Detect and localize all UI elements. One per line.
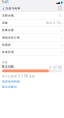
- staticText: ›: [61, 27, 62, 33]
- staticText: ‹: [2, 4, 4, 13]
- staticText: 充值与账单: [5, 7, 20, 10]
- staticText: 共 64 GB: [49, 66, 62, 69]
- button[interactable]: 增值业务订购: [0, 34, 64, 41]
- staticText: 剩余 2.1G: [46, 21, 60, 25]
- button[interactable]: 购买流量包: [2, 83, 17, 88]
- staticText: 用量: [2, 61, 8, 64]
- button[interactable]: 查看使用明细: [2, 78, 20, 83]
- staticText: 优惠券: [2, 43, 11, 46]
- staticText: 发票管理: [2, 50, 14, 54]
- staticText: 增值业务订购: [2, 36, 20, 39]
- button[interactable]: 流量: [0, 19, 64, 27]
- button[interactable]: 发票管理: [0, 49, 64, 56]
- staticText: ›: [61, 20, 62, 25]
- staticText: 流量: [2, 21, 8, 24]
- staticText: ›: [61, 35, 62, 40]
- button[interactable]: 优惠券: [0, 41, 64, 49]
- staticText: 话费余额: [2, 14, 14, 17]
- staticText: 购买流量包: [2, 85, 17, 89]
- staticText: ▂▄ ▮: [56, 1, 62, 4]
- button[interactable]: 话费余额: [0, 12, 64, 19]
- staticText: 8.3 GB: [2, 64, 14, 69]
- button[interactable]: 返回: [1, 4, 5, 12]
- staticText: ›: [61, 42, 62, 47]
- button[interactable]: 套餐余量: [0, 27, 64, 34]
- staticText: 查看使用明细: [2, 80, 20, 83]
- staticText: 本月已使用 8.3 GB 流量: [2, 74, 35, 78]
- staticText: ›: [61, 49, 62, 55]
- button[interactable]: 帮助: [57, 4, 62, 12]
- staticText: 9:41: [2, 0, 9, 4]
- staticText: 套餐余量: [2, 28, 14, 32]
